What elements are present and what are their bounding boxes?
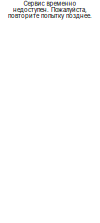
staticText: Сервис временно: [23, 0, 76, 7]
staticText: недоступен. Пожалуйста,: [13, 6, 87, 13]
staticText: повторите попытку позднее.: [8, 12, 92, 20]
